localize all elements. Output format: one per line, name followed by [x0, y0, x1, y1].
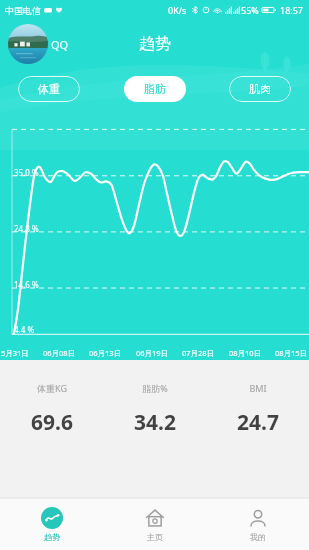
staticText: BMI	[249, 382, 267, 394]
staticText: QQ	[51, 37, 69, 52]
staticText: 06月19日	[136, 348, 169, 358]
button[interactable]: 主页	[103, 498, 206, 550]
button[interactable]: BMI	[206, 360, 309, 465]
staticText: 08月10日	[229, 348, 262, 358]
staticText: 34.2	[134, 408, 176, 437]
staticText: 14.6 %	[14, 279, 39, 290]
staticText: 69.6	[31, 408, 73, 437]
staticText: 55%	[241, 4, 259, 16]
staticText: 中国电信	[5, 5, 41, 16]
staticText: 24.8 %	[14, 223, 39, 234]
button[interactable]: QQ	[8, 24, 69, 64]
button[interactable]: 趋势	[0, 498, 103, 550]
staticText: 主页	[147, 532, 163, 542]
staticText: 趋势	[139, 34, 171, 54]
staticText: 18:57	[280, 4, 304, 16]
staticText: 我的	[250, 532, 266, 542]
staticText: 5月31日	[1, 348, 29, 358]
staticText: 体重	[38, 82, 60, 96]
button[interactable]: 我的	[206, 498, 309, 550]
staticText: 4.4 %	[14, 324, 35, 335]
staticText: 肌肉	[249, 82, 271, 96]
staticText: 24.7	[237, 408, 279, 437]
staticText: 07月28日	[182, 348, 215, 358]
staticText: 06月08日	[43, 348, 76, 358]
button[interactable]: 体重	[18, 76, 80, 102]
button[interactable]: 体重KG	[0, 360, 103, 465]
staticText: 0K/s	[168, 4, 187, 16]
staticText: 脂肪	[144, 82, 166, 96]
staticText: 脂肪%	[142, 382, 168, 394]
staticText: 趋势	[44, 532, 60, 542]
staticText: 06月13日	[89, 348, 122, 358]
staticText: 35.0 %	[14, 167, 39, 178]
button[interactable]: 肌肉	[229, 76, 291, 102]
button[interactable]: 脂肪%	[103, 360, 206, 465]
button[interactable]: 脂肪	[124, 76, 186, 102]
staticText: 体重KG	[37, 382, 67, 394]
staticText: 08月15日	[275, 348, 308, 358]
